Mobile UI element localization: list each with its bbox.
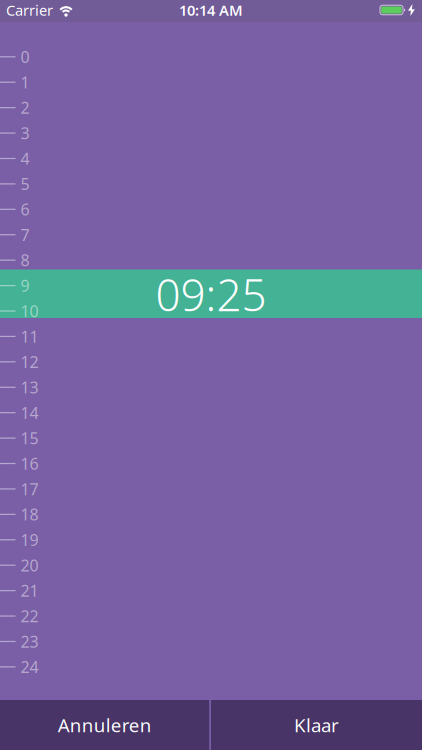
button[interactable]: Annuleren (0, 700, 209, 750)
staticText: 9 (20, 275, 29, 296)
staticText: 19 (20, 529, 38, 550)
staticText: 10:14 AM (179, 0, 243, 20)
staticText: 09:25 (155, 265, 266, 323)
button[interactable]: Klaar (211, 700, 422, 750)
staticText: 23 (20, 631, 38, 652)
staticText: 20 (20, 555, 38, 576)
staticText: Annuleren (58, 713, 152, 737)
staticText: 22 (20, 605, 38, 627)
staticText: 1 (20, 72, 29, 93)
staticText: 14 (20, 402, 38, 423)
staticText: Klaar (294, 713, 339, 737)
staticText: 11 (20, 326, 38, 347)
staticText: 7 (20, 224, 29, 245)
staticText: 16 (20, 453, 38, 474)
staticText: 0 (20, 46, 29, 67)
staticText: 3 (20, 122, 29, 144)
staticText: 24 (20, 656, 38, 677)
staticText: 15 (20, 427, 38, 449)
staticText: 13 (20, 377, 38, 398)
staticText: 10 (20, 300, 38, 322)
staticText: 2 (20, 97, 29, 118)
staticText: 5 (20, 173, 29, 194)
staticText: 17 (20, 478, 38, 499)
staticText: 12 (20, 351, 38, 372)
staticText: 21 (20, 580, 38, 601)
staticText: 18 (20, 504, 38, 525)
staticText: 6 (20, 199, 29, 220)
button[interactable]: Geselecteerde tijd 09:25 (0, 269, 422, 318)
staticText: Carrier (6, 0, 53, 20)
staticText: 8 (20, 249, 29, 271)
staticText: 4 (20, 148, 29, 169)
